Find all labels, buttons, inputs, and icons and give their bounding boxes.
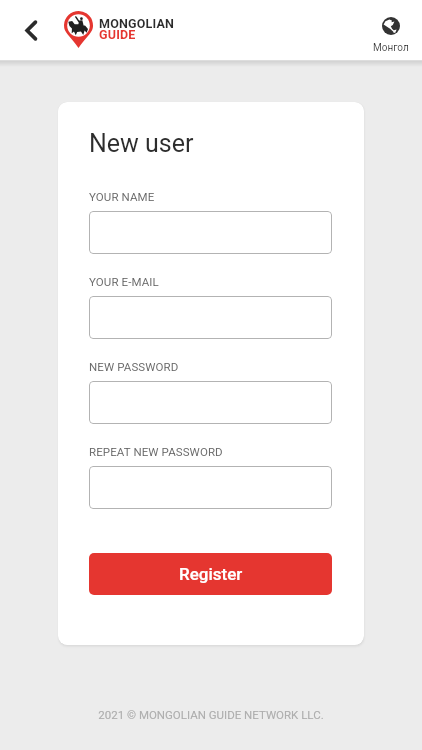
staticText: Монгол [373,42,409,54]
staticText: 2021 © MONGOLIAN GUIDE NETWORK LLC. [0,708,422,721]
staticText: REPEAT NEW PASSWORD [89,445,223,458]
button[interactable] [89,211,332,254]
staticText: MONGOLIAN [99,16,175,31]
button[interactable]: Language: Mongolian [369,17,413,54]
staticText: NEW PASSWORD [89,360,179,373]
staticText: Register [179,564,243,584]
button[interactable]: Register [89,553,332,595]
staticText: GUIDE [99,27,136,42]
button[interactable] [89,381,332,424]
button[interactable]: MONGOLIAN [64,11,175,48]
staticText: YOUR NAME [89,190,155,203]
staticText: New user [89,129,194,158]
button[interactable]: Back [11,10,51,50]
button[interactable] [89,296,332,339]
button[interactable] [89,466,332,509]
staticText: YOUR E-MAIL [89,275,159,288]
